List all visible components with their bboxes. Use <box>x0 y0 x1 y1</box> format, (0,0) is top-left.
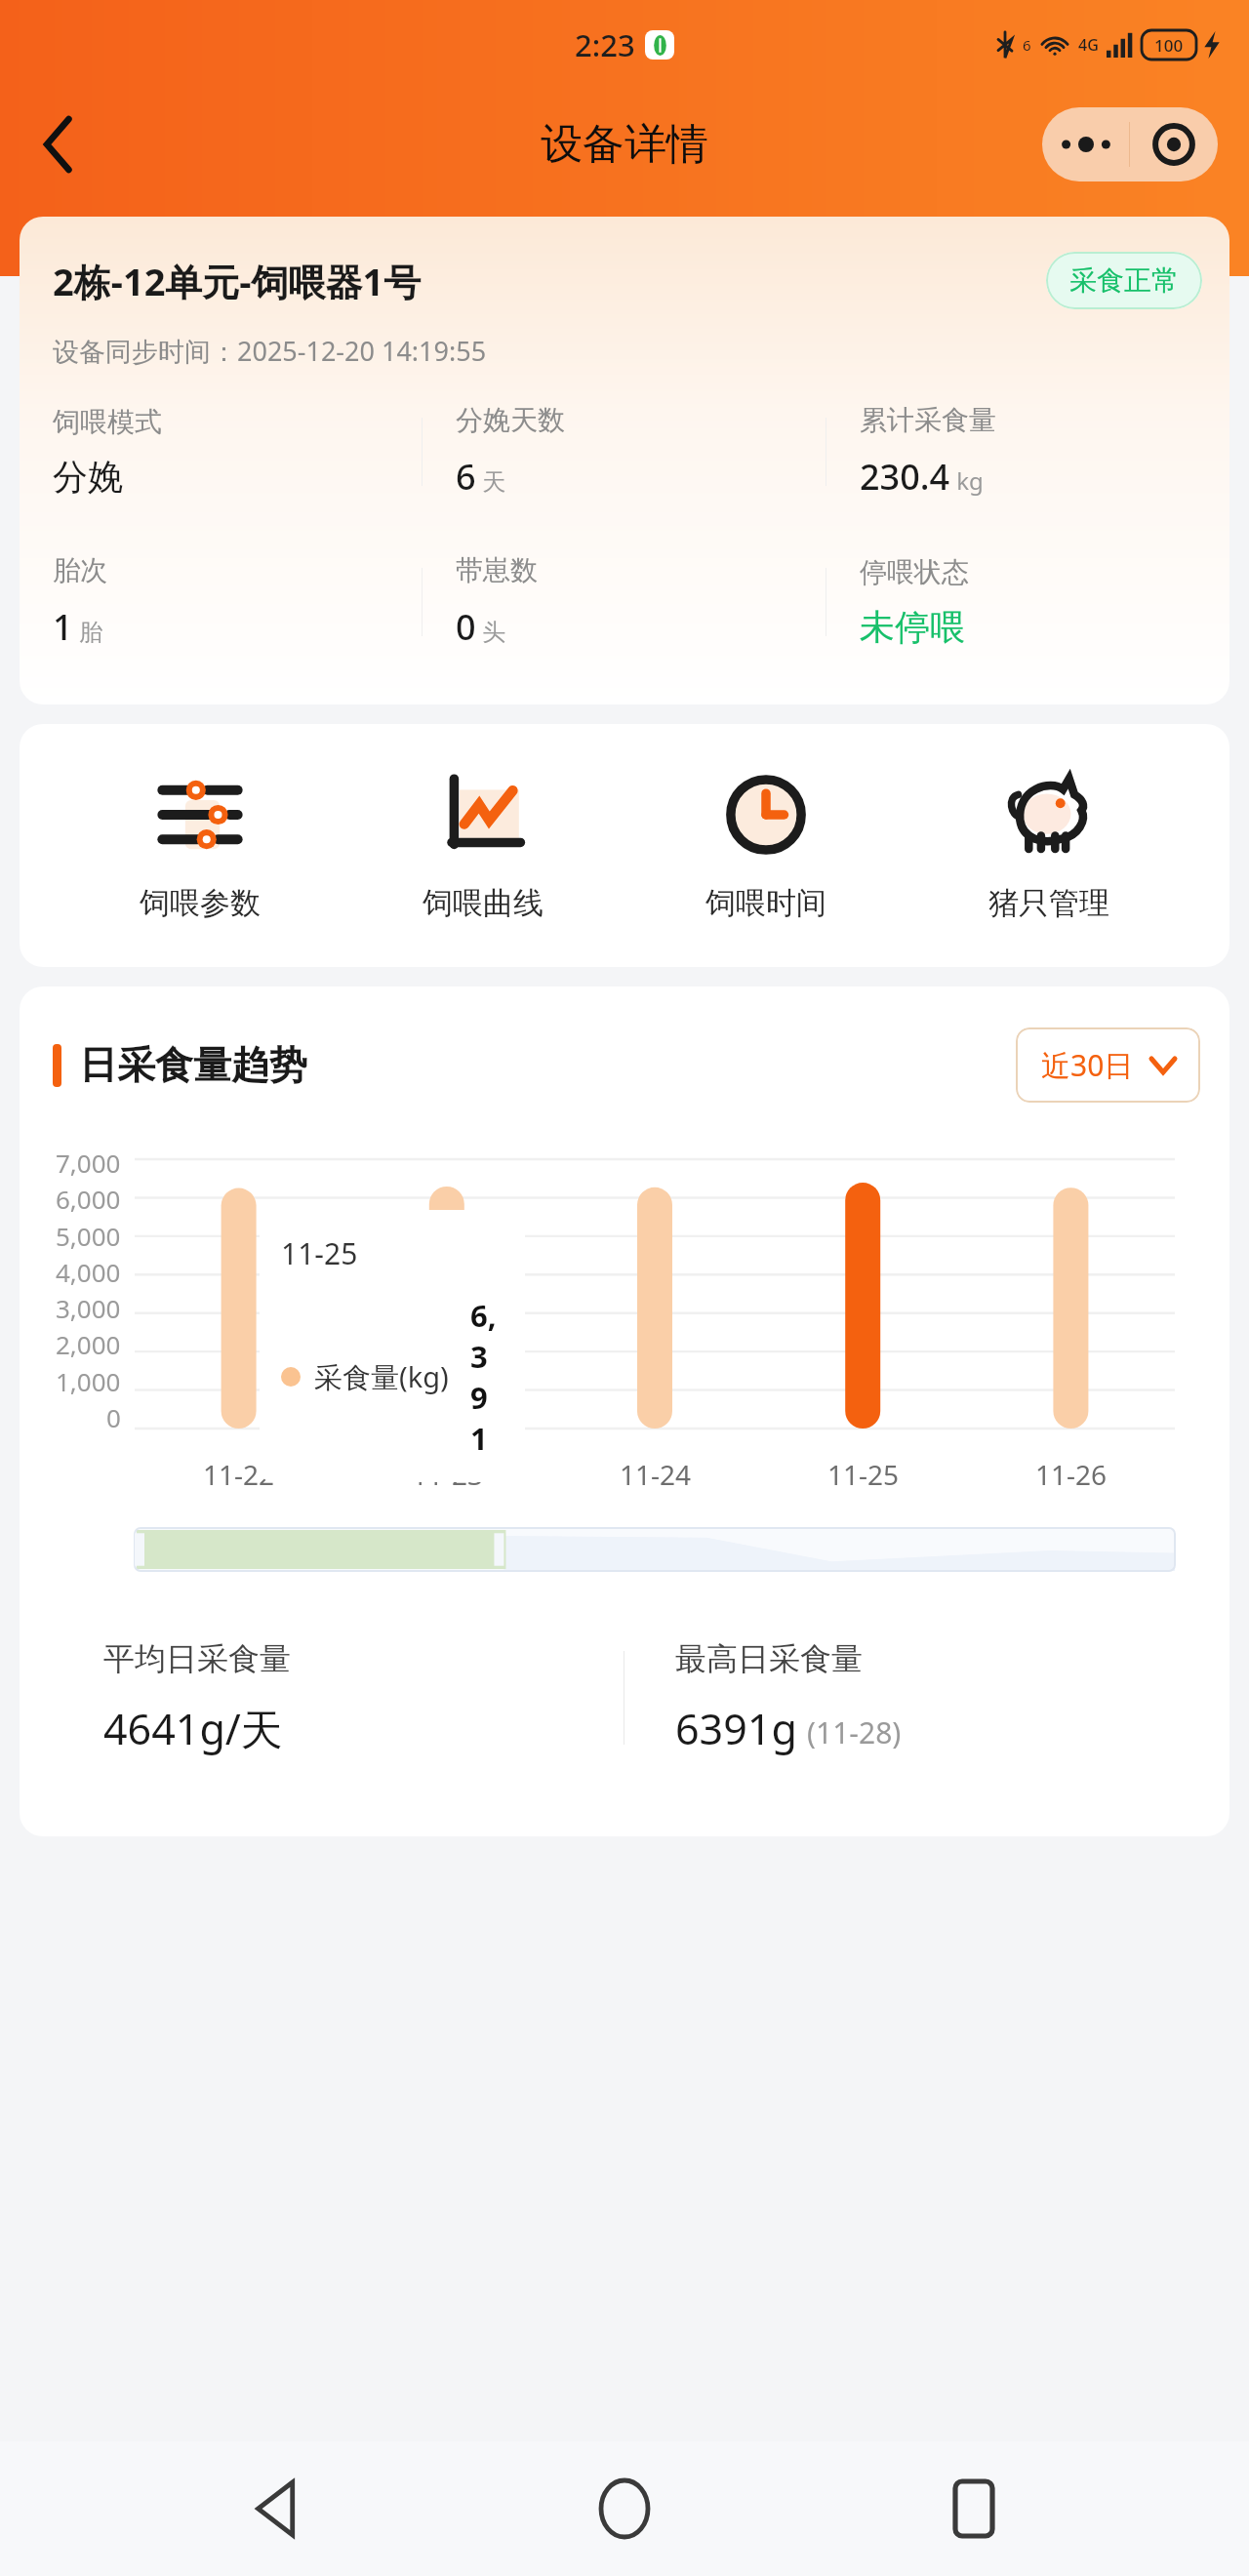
button[interactable]: 饲喂时间 <box>664 769 868 922</box>
staticText: 0 <box>456 603 476 651</box>
button[interactable]: Home <box>551 2441 698 2576</box>
staticText: (11-28) <box>807 1712 902 1752</box>
staticText: 分娩天数 <box>456 403 565 437</box>
staticText: 停喂状态 <box>860 555 969 589</box>
button[interactable]: Recent apps <box>901 2441 1047 2576</box>
staticText: 6391g <box>675 1700 797 1757</box>
staticText: 平均日采食量 <box>103 1639 291 1678</box>
button[interactable]: 采食正常 <box>1046 252 1202 309</box>
staticText: 11-25 <box>827 1456 900 1493</box>
staticText: 6,391 <box>470 1295 504 1459</box>
staticText: 4,000 <box>56 1255 121 1289</box>
staticText: 设备同步时间：2025-12-20 14:19:55 <box>53 333 487 369</box>
staticText: 饲喂时间 <box>705 884 826 922</box>
staticText: 最高日采食量 <box>675 1639 863 1678</box>
staticText: 设备详情 <box>541 118 708 171</box>
staticText: 3,000 <box>56 1291 121 1325</box>
staticText: 4G <box>1078 34 1099 56</box>
staticText: 饲喂参数 <box>140 884 261 922</box>
staticText: 采食量(kg) <box>314 1357 449 1396</box>
button[interactable] <box>135 1528 1175 1571</box>
staticText: 11-23 <box>412 1456 484 1493</box>
staticText: 胎次 <box>53 553 107 587</box>
staticText: 饲喂曲线 <box>423 884 544 922</box>
button[interactable]: 近30日 <box>1016 1027 1200 1103</box>
staticText: 11-24 <box>620 1456 692 1493</box>
button[interactable]: 饲喂参数 <box>98 769 302 922</box>
button[interactable]: More options <box>1042 107 1129 181</box>
staticText: 4641g/天 <box>103 1700 283 1757</box>
button[interactable]: Back <box>18 103 100 185</box>
staticText: 2,000 <box>56 1327 121 1361</box>
staticText: 230.4 <box>860 453 950 501</box>
button[interactable]: Record <box>1130 107 1218 181</box>
staticText: 采食正常 <box>1069 263 1179 298</box>
staticText: 11-25 <box>281 1233 358 1273</box>
staticText: 11-22 <box>203 1456 275 1493</box>
button[interactable]: Back <box>203 2441 349 2576</box>
staticText: 6,000 <box>56 1182 121 1216</box>
staticText: 带崽数 <box>456 553 538 587</box>
button[interactable]: 猪只管理 <box>947 769 1151 922</box>
staticText: 近30日 <box>1041 1045 1134 1085</box>
staticText: 6 <box>1023 35 1031 55</box>
staticText: 2栋-12单元-饲喂器1号 <box>53 256 1046 306</box>
staticText: 6 <box>456 453 476 501</box>
staticText: 2:23 <box>575 24 635 65</box>
staticText: 1,000 <box>56 1364 121 1398</box>
staticText: 未停喂 <box>860 605 965 649</box>
staticText: 0 <box>106 1400 121 1434</box>
staticText: 天 <box>476 464 506 497</box>
staticText: 累计采食量 <box>860 403 996 437</box>
staticText: 猪只管理 <box>988 884 1109 922</box>
staticText: 5,000 <box>56 1219 121 1253</box>
staticText: kg <box>950 464 984 497</box>
staticText: 分娩 <box>53 455 123 499</box>
button[interactable]: 饲喂曲线 <box>381 769 585 922</box>
staticText: 日采食量趋势 <box>79 1041 1016 1089</box>
staticText: 11-26 <box>1035 1456 1108 1493</box>
staticText: 7,000 <box>56 1146 121 1180</box>
staticText: 头 <box>476 615 506 647</box>
staticText: 1 <box>53 603 73 651</box>
staticText: 胎 <box>73 615 103 647</box>
staticText: 100 <box>1154 34 1184 57</box>
staticText: 饲喂模式 <box>53 405 162 439</box>
